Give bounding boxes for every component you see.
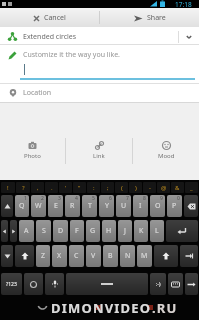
staticText: Mood	[158, 152, 175, 160]
staticText: 1	[24, 195, 27, 202]
staticText: 7	[126, 195, 129, 202]
button[interactable]: H	[102, 220, 116, 242]
button[interactable]: P	[167, 195, 182, 217]
staticText: "	[78, 184, 81, 192]
button[interactable]: L	[150, 220, 164, 242]
button[interactable]	[66, 273, 148, 295]
button[interactable]	[180, 245, 198, 267]
button[interactable]: -	[143, 182, 156, 193]
button[interactable]: E	[48, 195, 63, 217]
button[interactable]: ;	[101, 182, 114, 193]
staticText: '	[65, 184, 67, 192]
button[interactable]: V	[86, 245, 101, 267]
button[interactable]: .	[45, 182, 58, 193]
button[interactable]: T	[82, 195, 97, 217]
button[interactable]: A	[19, 220, 34, 242]
staticText: D	[58, 226, 64, 236]
button[interactable]: K	[134, 220, 148, 242]
staticText: U	[121, 201, 127, 211]
button[interactable]: :-)	[150, 273, 166, 295]
button[interactable]: D	[53, 220, 68, 242]
button[interactable]: Cancel	[0, 8, 99, 27]
button[interactable]: Z	[36, 245, 50, 267]
staticText: O	[155, 201, 161, 211]
button[interactable]	[1, 245, 13, 267]
button[interactable]: U	[116, 195, 131, 217]
button[interactable]: Link	[66, 136, 132, 166]
button[interactable]	[24, 273, 43, 295]
button[interactable]: Y	[99, 195, 114, 217]
button[interactable]	[154, 245, 178, 267]
button[interactable]: B	[103, 245, 118, 267]
button[interactable]: Mood	[133, 136, 199, 166]
button[interactable]: :	[87, 182, 100, 193]
button[interactable]: N	[120, 245, 135, 267]
button[interactable]	[1, 220, 8, 242]
button[interactable]: R	[65, 195, 80, 217]
staticText: .RU	[152, 299, 178, 317]
staticText: S	[42, 226, 46, 236]
button[interactable]	[15, 245, 34, 267]
staticText: E	[54, 201, 58, 211]
staticText: Z	[41, 251, 46, 261]
button[interactable]	[1, 195, 13, 217]
button[interactable]	[185, 273, 198, 295]
staticText: K	[139, 226, 144, 236]
button[interactable]	[166, 220, 198, 242]
button[interactable]	[184, 195, 198, 217]
staticText: X	[57, 251, 62, 261]
staticText: C	[74, 251, 79, 261]
staticText: 9	[160, 195, 163, 202]
staticText: ,	[37, 184, 39, 192]
staticText: Link	[93, 152, 105, 160]
staticText: :	[93, 184, 95, 192]
button[interactable]: '	[59, 182, 72, 193]
button[interactable]: Photo	[0, 136, 65, 166]
staticText: 17:18	[175, 0, 192, 8]
button[interactable]	[10, 220, 17, 242]
button[interactable]: O	[150, 195, 165, 217]
staticText: L	[155, 226, 159, 236]
button[interactable]: (	[115, 182, 128, 193]
button[interactable]: &	[171, 182, 184, 193]
staticText: .	[51, 184, 53, 192]
button[interactable]	[168, 273, 183, 295]
staticText: I	[139, 201, 142, 211]
button[interactable]	[45, 273, 64, 295]
button[interactable]: ,	[31, 182, 44, 193]
button[interactable]: Share	[100, 8, 199, 27]
button[interactable]: Customize it the way you like.	[0, 45, 199, 83]
staticText: B	[108, 251, 113, 261]
staticText: 8	[143, 195, 146, 202]
staticText: R	[70, 201, 75, 211]
staticText: DIMONVIDEO	[51, 299, 152, 317]
staticText: V	[91, 251, 96, 261]
staticText: Location	[23, 88, 52, 98]
button[interactable]: )	[129, 182, 142, 193]
staticText: !	[7, 184, 9, 192]
button[interactable]: J	[118, 220, 132, 242]
staticText: F	[75, 226, 79, 236]
button[interactable]: Q	[15, 195, 29, 217]
button[interactable]: ?123	[1, 273, 22, 295]
staticText: A	[24, 226, 29, 236]
button[interactable]: F	[70, 220, 84, 242]
button[interactable]: M	[137, 245, 152, 267]
button[interactable]: Location	[0, 83, 199, 103]
staticText: 0	[177, 195, 180, 202]
button[interactable]: X	[52, 245, 67, 267]
staticText: W	[35, 201, 42, 211]
button[interactable]: ?	[16, 182, 30, 193]
button[interactable]: G	[86, 220, 100, 242]
button[interactable]: S	[36, 220, 51, 242]
button[interactable]: C	[69, 245, 84, 267]
button[interactable]: I	[133, 195, 148, 217]
button[interactable]: _	[185, 182, 198, 193]
button[interactable]: Extended circles	[0, 28, 199, 45]
button[interactable]: "	[73, 182, 86, 193]
staticText: ?123	[6, 281, 17, 288]
button[interactable]: !	[1, 182, 15, 193]
staticText: Customize it the way you like.	[23, 50, 120, 60]
button[interactable]: W	[31, 195, 46, 217]
button[interactable]: @	[157, 182, 170, 193]
